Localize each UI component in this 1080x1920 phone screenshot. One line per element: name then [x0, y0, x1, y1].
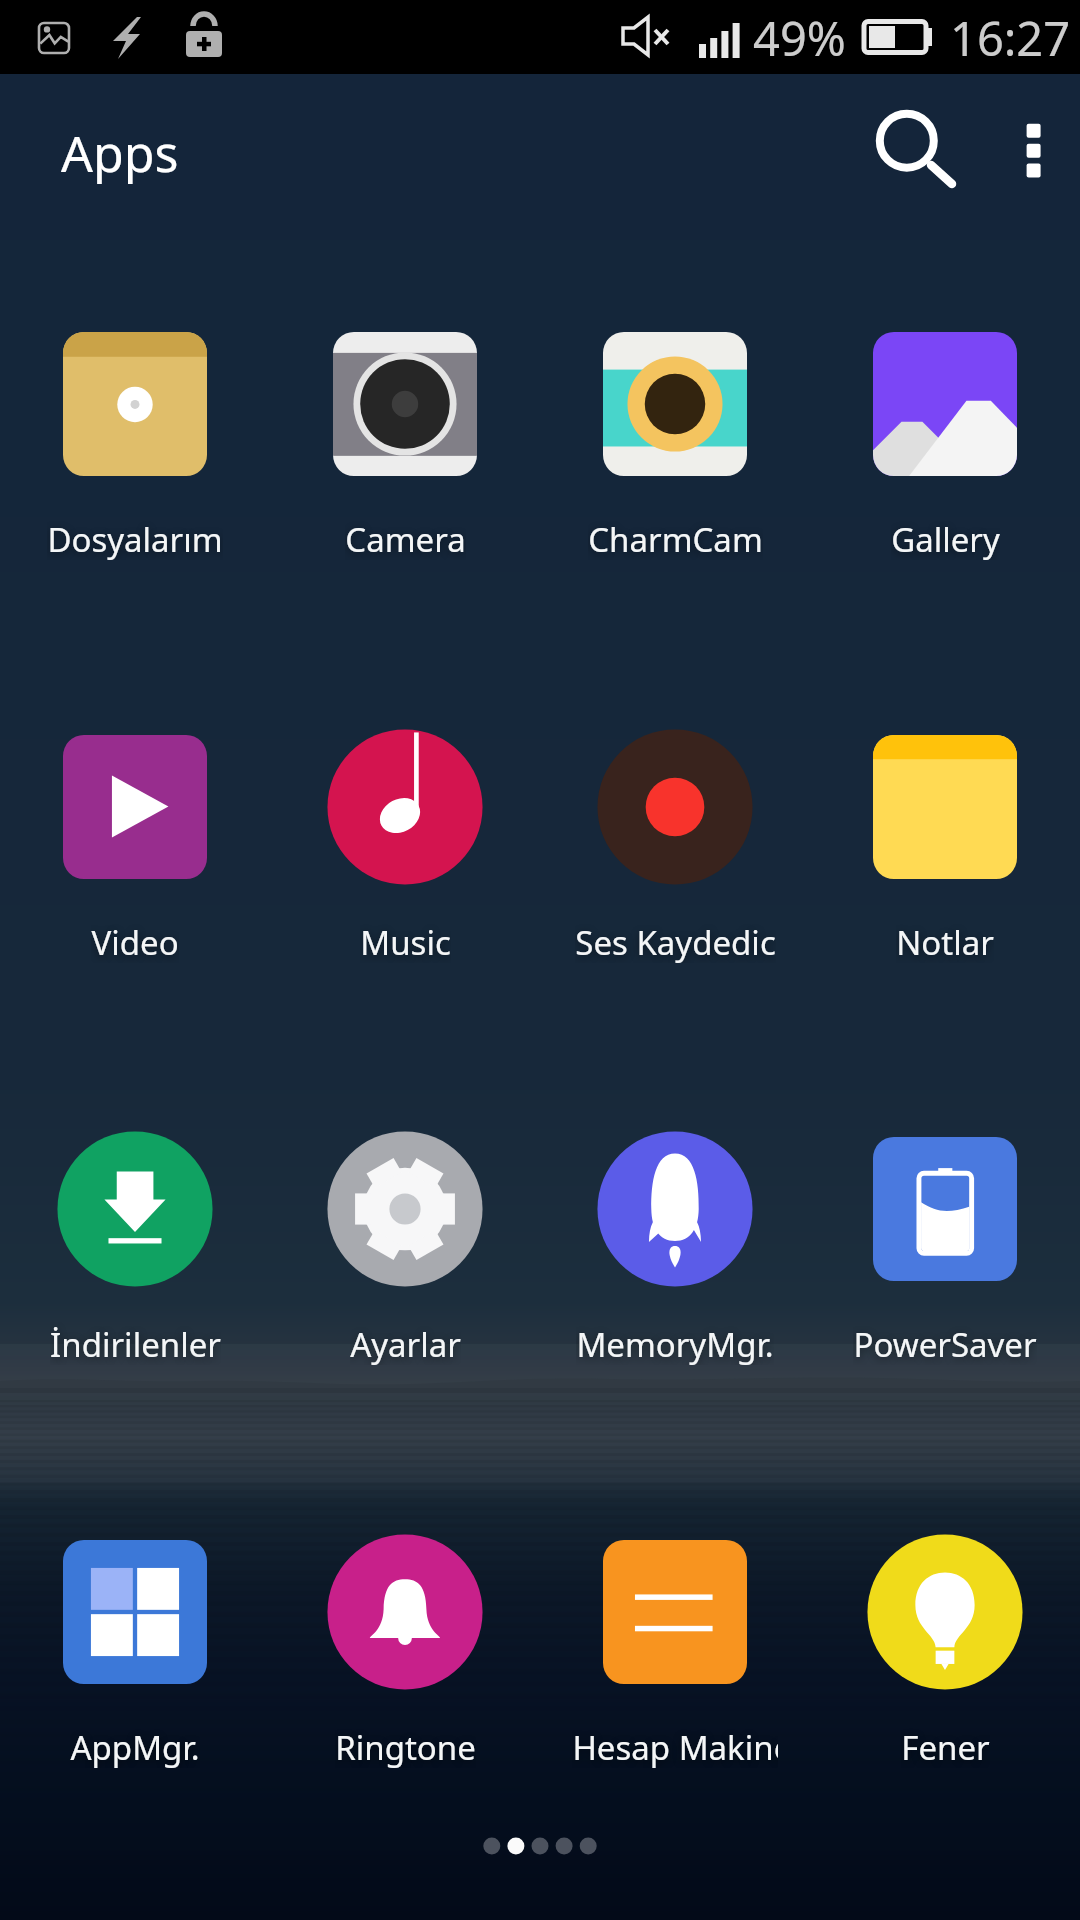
staticText: MemoryMgr.: [576, 1322, 774, 1365]
button[interactable]: Gallery: [810, 320, 1080, 560]
button[interactable]: Search: [856, 90, 966, 200]
button[interactable]: Ses Kaydedic: [540, 723, 810, 963]
button[interactable]: Fener: [810, 1528, 1080, 1768]
staticText: Music: [360, 920, 451, 963]
button[interactable]: Video: [0, 723, 270, 963]
staticText: Apps: [61, 119, 179, 187]
button[interactable]: Camera: [270, 320, 540, 560]
button[interactable]: Hesap Makinesi: [540, 1528, 810, 1768]
button[interactable]: Ringtone: [270, 1528, 540, 1768]
staticText: Camera: [345, 517, 466, 560]
button[interactable]: MemoryMgr.: [540, 1125, 810, 1365]
staticText: AppMgr.: [70, 1725, 200, 1768]
staticText: Video: [91, 920, 179, 963]
staticText: Notlar: [896, 920, 994, 963]
staticText: İndirilenler: [50, 1322, 221, 1365]
staticText: Ringtone: [335, 1725, 476, 1768]
staticText: 16:27: [950, 6, 1071, 70]
button[interactable]: More options: [988, 91, 1078, 181]
staticText: 49%: [753, 6, 846, 70]
staticText: Dosyalarım: [47, 517, 223, 560]
staticText: Ses Kaydedic: [575, 920, 776, 963]
staticText: CharmCam: [588, 517, 763, 560]
button[interactable]: Music: [270, 723, 540, 963]
staticText: Ayarlar: [350, 1322, 461, 1365]
button[interactable]: CharmCam: [540, 320, 810, 560]
button[interactable]: Notlar: [810, 723, 1080, 963]
staticText: PowerSaver: [853, 1322, 1037, 1365]
staticText: Hesap Makinesi: [572, 1725, 778, 1768]
button[interactable]: AppMgr.: [0, 1528, 270, 1768]
button[interactable]: PowerSaver: [810, 1125, 1080, 1365]
staticText: Gallery: [891, 517, 1000, 560]
button[interactable]: İndirilenler: [0, 1125, 270, 1365]
button[interactable]: Ayarlar: [270, 1125, 540, 1365]
staticText: Fener: [901, 1725, 990, 1768]
button[interactable]: Dosyalarım: [0, 320, 270, 560]
